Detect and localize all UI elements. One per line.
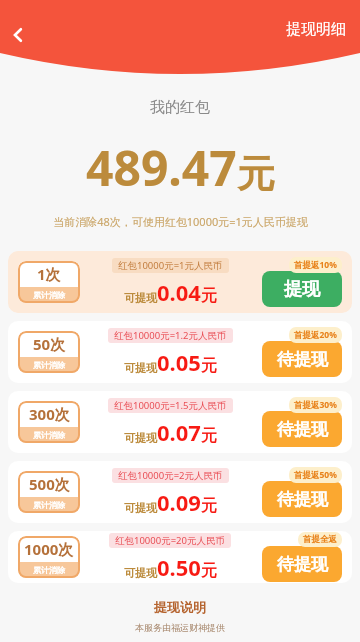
staticText: 50次 bbox=[33, 334, 66, 354]
staticText: 0.04 bbox=[157, 277, 201, 307]
staticText: 累计消除 bbox=[33, 290, 65, 300]
button[interactable]: 1000次 bbox=[8, 531, 352, 583]
staticText: 0.50 bbox=[157, 552, 201, 582]
button[interactable]: 1次 bbox=[8, 251, 352, 313]
staticText: 红包10000元=1.5元人民币 bbox=[114, 399, 227, 412]
staticText: 可提现 bbox=[124, 431, 157, 445]
staticText: 1000次 bbox=[24, 539, 74, 559]
staticText: 当前消除48次，可使用红包10000元=1元人民币提现 bbox=[53, 214, 308, 229]
staticText: 可提现 bbox=[124, 291, 157, 305]
staticText: 500次 bbox=[29, 474, 70, 494]
staticText: 可提现 bbox=[124, 566, 157, 580]
staticText: 本服务由福运财神提供 bbox=[135, 622, 225, 633]
button[interactable]: 提现明细 bbox=[282, 18, 350, 41]
staticText: 累计消除 bbox=[33, 500, 65, 510]
staticText: 待提现 bbox=[277, 419, 328, 440]
button[interactable]: 500次 bbox=[8, 461, 352, 523]
button[interactable]: 提现说明 bbox=[148, 597, 212, 617]
staticText: 首提返30% bbox=[294, 399, 337, 411]
button[interactable]: 待提现 bbox=[262, 411, 342, 447]
staticText: 0.09 bbox=[157, 487, 201, 517]
staticText: 提现说明 bbox=[154, 599, 206, 615]
button[interactable]: 提现 bbox=[262, 271, 342, 307]
staticText: 元 bbox=[201, 356, 217, 376]
button[interactable]: 300次 bbox=[8, 391, 352, 453]
staticText: 累计消除 bbox=[33, 430, 65, 440]
staticText: 待提现 bbox=[277, 489, 328, 510]
staticText: 我的红包 bbox=[150, 98, 210, 117]
staticText: 300次 bbox=[29, 404, 70, 424]
button[interactable]: 待提现 bbox=[262, 546, 342, 582]
button[interactable]: 50次 bbox=[8, 321, 352, 383]
staticText: 待提现 bbox=[277, 554, 328, 575]
staticText: 首提返10% bbox=[294, 259, 337, 271]
staticText: 元 bbox=[201, 426, 217, 446]
staticText: 元 bbox=[201, 286, 217, 306]
staticText: 红包10000元=1.2元人民币 bbox=[114, 329, 227, 342]
staticText: 元 bbox=[201, 496, 217, 516]
button[interactable]: 待提现 bbox=[262, 341, 342, 377]
button[interactable]: Back bbox=[0, 13, 40, 57]
staticText: 0.05 bbox=[157, 347, 201, 377]
staticText: 1次 bbox=[37, 264, 61, 284]
staticText: 可提现 bbox=[124, 501, 157, 515]
staticText: 累计消除 bbox=[33, 565, 65, 575]
button[interactable]: 待提现 bbox=[262, 481, 342, 517]
staticText: 首提全返 bbox=[303, 534, 337, 545]
staticText: 首提返20% bbox=[294, 329, 337, 341]
staticText: 红包10000元=20元人民币 bbox=[115, 534, 225, 547]
staticText: 489.47 bbox=[86, 135, 237, 200]
staticText: 0.07 bbox=[157, 417, 201, 447]
staticText: 红包10000元=2元人民币 bbox=[118, 469, 223, 482]
staticText: 红包10000元=1元人民币 bbox=[118, 259, 223, 272]
staticText: 累计消除 bbox=[33, 360, 65, 370]
staticText: 可提现 bbox=[124, 361, 157, 375]
staticText: 待提现 bbox=[277, 349, 328, 370]
staticText: 提现明细 bbox=[286, 20, 346, 39]
staticText: 首提返50% bbox=[294, 469, 337, 481]
staticText: 提现 bbox=[284, 278, 320, 301]
staticText: 元 bbox=[237, 150, 275, 198]
staticText: 元 bbox=[201, 561, 217, 581]
